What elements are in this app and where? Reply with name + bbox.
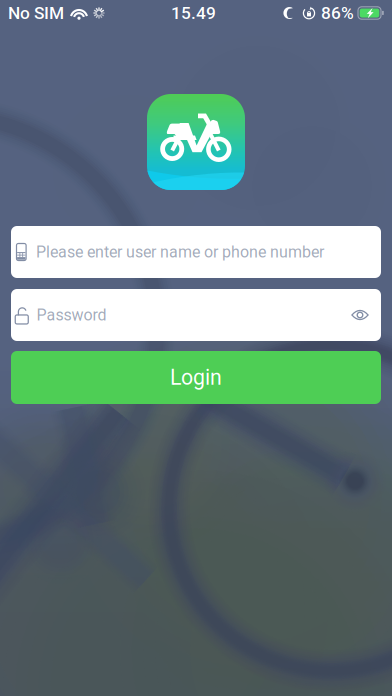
staticText: No SIM	[8, 3, 64, 23]
staticText: 86%	[321, 3, 354, 23]
button[interactable]: Password	[15, 289, 335, 341]
button[interactable]: Please enter user name or phone number	[11, 226, 381, 278]
button[interactable]: Login	[11, 351, 381, 404]
staticText: Password	[36, 306, 106, 324]
staticText: Please enter user name or phone number	[36, 243, 324, 261]
staticText: 15.49	[171, 3, 216, 23]
button[interactable]: Show password	[335, 289, 369, 341]
staticText: Login	[170, 365, 222, 390]
